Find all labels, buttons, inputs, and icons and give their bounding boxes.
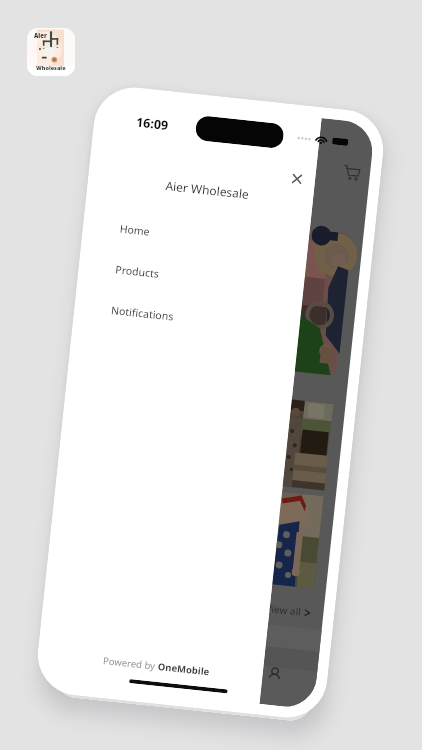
- button[interactable]: Cart: [341, 163, 362, 183]
- staticText: Wholesale: [36, 64, 66, 71]
- button[interactable]: Products: [102, 254, 254, 298]
- button[interactable]: View all: [265, 599, 311, 622]
- staticText: Aier Wholesale: [165, 177, 250, 202]
- staticText: Powered by: [102, 654, 159, 673]
- staticText: 16:09: [135, 114, 170, 134]
- button[interactable]: Notifications: [98, 295, 250, 338]
- staticText: OneMobile: [157, 660, 210, 678]
- staticText: Notifications: [110, 303, 175, 324]
- staticText: Home: [119, 221, 150, 239]
- button[interactable]: Account: [267, 667, 282, 682]
- staticText: Products: [115, 262, 160, 281]
- button[interactable]: Home: [106, 213, 258, 257]
- staticText: View all: [265, 601, 302, 619]
- staticText: Aier: [34, 32, 47, 40]
- button[interactable]: Close menu: [285, 167, 309, 191]
